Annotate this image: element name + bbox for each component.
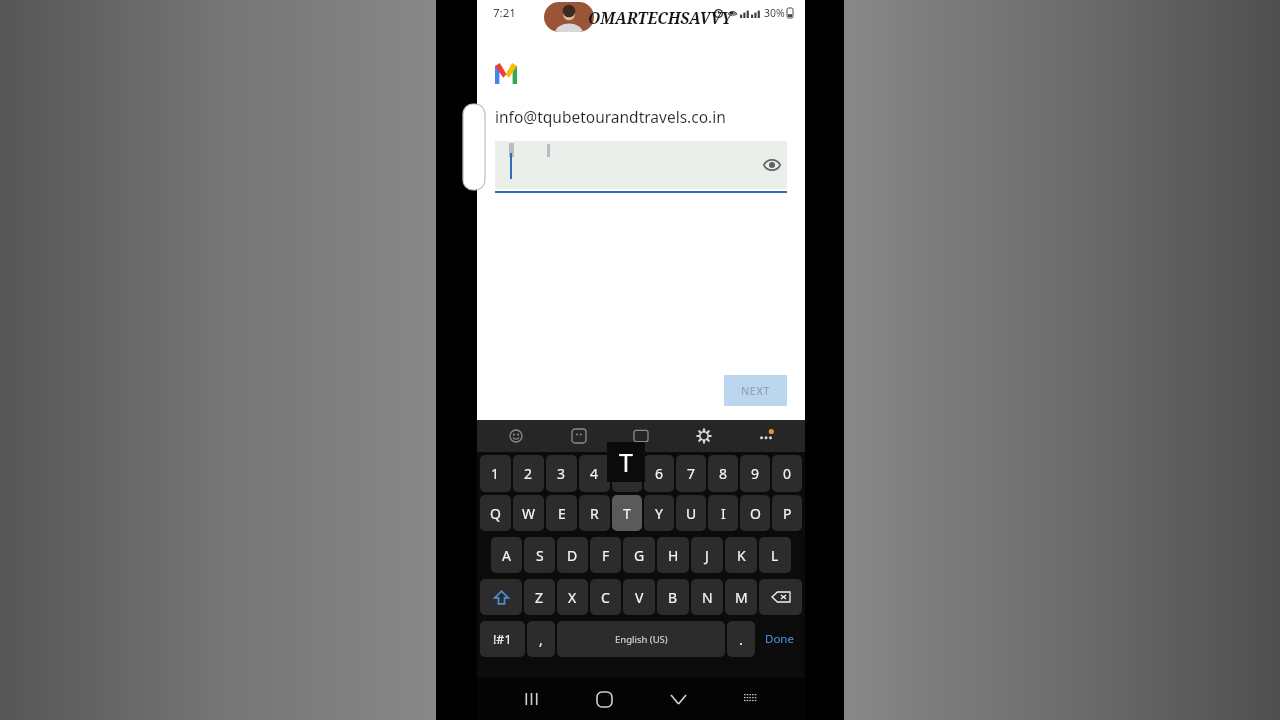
button[interactable]: GIF: [628, 423, 654, 449]
button[interactable]: Show password: [757, 150, 787, 180]
button[interactable]: Shift: [480, 579, 522, 615]
button[interactable]: I: [708, 495, 738, 531]
staticText: D: [567, 546, 578, 565]
staticText: U: [686, 504, 697, 523]
button[interactable]: 9: [740, 455, 770, 492]
staticText: E: [558, 504, 566, 523]
staticText: English (US): [615, 633, 668, 646]
button[interactable]: P: [772, 495, 802, 531]
staticText: ,: [539, 630, 543, 649]
button[interactable]: ,: [527, 621, 555, 657]
staticText: 6: [655, 464, 664, 483]
button[interactable]: T: [612, 495, 642, 531]
button[interactable]: E: [546, 495, 577, 531]
button[interactable]: J: [691, 537, 723, 573]
staticText: 4: [590, 464, 599, 483]
button[interactable]: English (US): [557, 621, 725, 657]
staticText: J: [705, 546, 709, 565]
staticText: NEXT: [741, 384, 771, 398]
button[interactable]: 7: [676, 455, 706, 492]
button[interactable]: C: [590, 579, 621, 615]
button[interactable]: L: [759, 537, 791, 573]
button[interactable]: R: [579, 495, 610, 531]
button[interactable]: F: [590, 537, 621, 573]
staticText: info@tqubetourandtravels.co.in: [495, 106, 726, 127]
staticText: C: [601, 588, 610, 607]
button[interactable]: Backspace: [759, 579, 802, 615]
button[interactable]: U: [676, 495, 706, 531]
button[interactable]: Q: [480, 495, 511, 531]
staticText: 2: [524, 464, 533, 483]
button[interactable]: S: [524, 537, 555, 573]
staticText: 7: [687, 464, 696, 483]
staticText: Done: [765, 631, 794, 647]
button[interactable]: Recent apps: [512, 680, 550, 718]
staticText: Y: [655, 504, 663, 523]
button[interactable]: NEXT: [724, 375, 787, 406]
button[interactable]: !#1: [480, 621, 525, 657]
button[interactable]: A: [491, 537, 522, 573]
button[interactable]: 6: [644, 455, 674, 492]
staticText: OMARTECHSAVVY: [588, 7, 732, 28]
staticText: 1: [491, 464, 500, 483]
staticText: .: [739, 630, 743, 649]
staticText: T: [619, 445, 633, 479]
button[interactable]: W: [513, 495, 544, 531]
button[interactable]: 2: [513, 455, 544, 492]
staticText: G: [634, 546, 645, 565]
button[interactable]: Hide keyboard: [659, 680, 697, 718]
staticText: L: [771, 546, 779, 565]
staticText: S: [536, 546, 544, 565]
button[interactable]: Switch keyboard: [732, 680, 770, 718]
button[interactable]: G: [623, 537, 655, 573]
button[interactable]: 3: [546, 455, 577, 492]
staticText: 5: [623, 464, 632, 483]
button[interactable]: V: [623, 579, 655, 615]
staticText: H: [668, 546, 679, 565]
button[interactable]: Y: [644, 495, 674, 531]
staticText: Q: [490, 504, 501, 523]
button[interactable]: Emoji: [503, 423, 529, 449]
staticText: !#1: [493, 631, 512, 648]
staticText: 3: [557, 464, 566, 483]
staticText: B: [668, 588, 678, 607]
button[interactable]: Show password: [495, 141, 787, 193]
button[interactable]: Stickers: [566, 423, 592, 449]
button[interactable]: 8: [708, 455, 738, 492]
staticText: N: [702, 588, 713, 607]
button[interactable]: D: [557, 537, 588, 573]
button[interactable]: Home: [585, 680, 623, 718]
button[interactable]: Z: [524, 579, 555, 615]
staticText: 30%: [764, 6, 785, 20]
button[interactable]: H: [657, 537, 689, 573]
button[interactable]: X: [557, 579, 588, 615]
staticText: R: [590, 504, 599, 523]
staticText: M: [735, 588, 748, 607]
button[interactable]: B: [657, 579, 689, 615]
staticText: 7:21: [493, 5, 516, 21]
staticText: F: [602, 546, 610, 565]
staticText: K: [737, 546, 746, 565]
staticText: T: [623, 504, 631, 523]
staticText: Z: [535, 588, 544, 607]
button[interactable]: O: [740, 495, 770, 531]
button[interactable]: More options: [753, 423, 779, 449]
staticText: A: [502, 546, 511, 565]
staticText: 8: [719, 464, 728, 483]
staticText: 9: [751, 464, 760, 483]
staticText: P: [783, 504, 792, 523]
button[interactable]: 1: [480, 455, 511, 492]
staticText: X: [568, 588, 577, 607]
button[interactable]: N: [691, 579, 723, 615]
button[interactable]: K: [725, 537, 757, 573]
button[interactable]: 0: [772, 455, 802, 492]
button[interactable]: Done: [757, 621, 802, 657]
button[interactable]: Settings: [691, 423, 717, 449]
staticText: O: [750, 504, 761, 523]
button[interactable]: .: [727, 621, 755, 657]
staticText: V: [635, 588, 644, 607]
button[interactable]: 4: [579, 455, 610, 492]
staticText: 0: [783, 464, 792, 483]
button[interactable]: M: [725, 579, 757, 615]
button[interactable]: 5: [612, 455, 642, 492]
